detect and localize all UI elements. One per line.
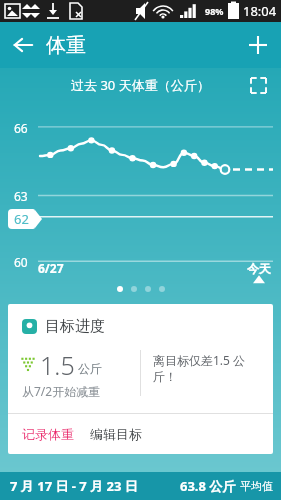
staticText: 98%	[205, 5, 224, 17]
staticText: 从7/2开始减重	[22, 383, 101, 399]
staticText: 平均值	[240, 479, 273, 493]
staticText: 离目标仅差1.5 公斤！	[153, 352, 263, 385]
staticText: 62	[14, 210, 29, 228]
button[interactable]: 编辑目标	[82, 414, 154, 454]
button[interactable]: 记录体重	[8, 414, 82, 454]
button[interactable]: Back	[0, 22, 46, 68]
staticText: 66	[14, 120, 28, 136]
staticText: 18:04	[243, 2, 277, 20]
staticText: 1.5	[40, 348, 75, 382]
staticText: 今天	[247, 261, 271, 276]
staticText: 记录体重	[22, 426, 74, 442]
button[interactable]: Page 3	[145, 286, 151, 292]
staticText: 公斤	[78, 361, 102, 376]
staticText: 7 月 17 日 - 7 月 23 日	[10, 477, 138, 495]
button[interactable]: Add	[235, 22, 281, 68]
staticText: 编辑目标	[90, 426, 142, 442]
button[interactable]: Page 1	[117, 286, 123, 292]
staticText: 63.8 公斤	[180, 477, 236, 495]
button[interactable]: Fullscreen	[243, 70, 273, 100]
button[interactable]: 7 月 17 日 - 7 月 23 日	[0, 472, 281, 500]
button[interactable]: Page 4	[159, 286, 165, 292]
staticText: 60	[14, 254, 28, 270]
button[interactable]: Page 2	[131, 286, 137, 292]
staticText: 6/27	[38, 260, 64, 276]
staticText: 63	[14, 188, 28, 204]
staticText: 体重	[46, 33, 86, 58]
staticText: 目标进度	[45, 317, 105, 336]
staticText: 过去 30 天体重（公斤）	[71, 76, 210, 94]
